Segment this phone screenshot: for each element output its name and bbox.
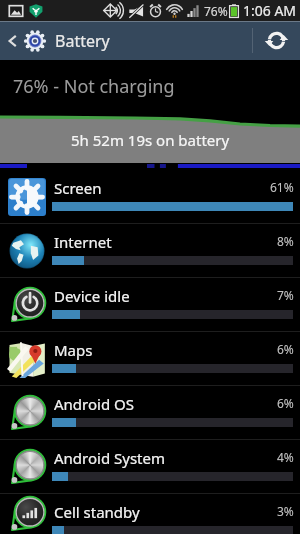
staticText: Screen [54, 178, 102, 198]
staticText: 1:06 AM [243, 1, 297, 20]
staticText: 6% [277, 341, 294, 357]
staticText: Battery [55, 30, 110, 52]
staticText: Cell standby [54, 502, 140, 522]
staticText: 4% [277, 449, 294, 465]
button[interactable]: Screen [0, 170, 300, 223]
staticText: Device idle [54, 286, 130, 306]
button[interactable]: Android OS [0, 386, 300, 439]
staticText: 7% [277, 287, 294, 303]
button[interactable]: Maps [0, 332, 300, 385]
staticText: Internet [54, 232, 112, 252]
staticText: 8% [277, 233, 294, 249]
staticText: 61% [270, 179, 294, 195]
button[interactable]: Android System [0, 440, 300, 493]
button[interactable]: Cell standby [0, 494, 300, 534]
button[interactable]: Device idle [0, 278, 300, 331]
staticText: Android System [54, 448, 166, 468]
staticText: 3% [277, 503, 294, 519]
staticText: 6% [277, 395, 294, 411]
button[interactable]: Battery [0, 30, 118, 52]
staticText: Android OS [54, 394, 134, 414]
button[interactable]: Refresh [252, 21, 300, 60]
staticText: Maps [54, 340, 93, 360]
staticText: 76% [204, 3, 228, 19]
staticText: 76% - Not charging [13, 74, 175, 99]
staticText: 5h 52m 19s on battery [71, 130, 230, 150]
button[interactable]: Internet [0, 224, 300, 277]
